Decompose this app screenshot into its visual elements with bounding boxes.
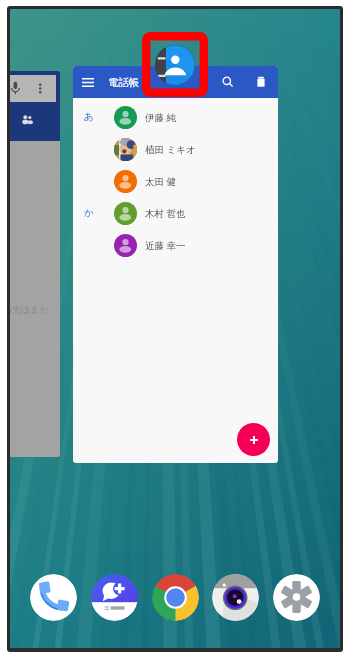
button[interactable]: Menu [77,71,99,93]
button[interactable]: 近藤 幸一 [73,229,278,261]
button[interactable]: Delete [250,71,272,93]
staticText: 電話帳 [108,76,140,89]
button[interactable]: Phone [30,574,77,621]
button[interactable]: 植田 ミキオ [73,133,278,165]
staticText: 連絡先はまだ [10,304,49,315]
staticText: 伊藤 純 [145,111,176,124]
staticText: か [84,207,94,219]
button[interactable]: Settings [273,574,320,621]
button[interactable]: 連絡先はまだ [10,71,60,457]
staticText: あ [84,111,94,123]
button[interactable]: Messages [91,574,138,621]
button[interactable]: Camera [212,574,259,621]
button[interactable]: か [73,197,278,229]
staticText: 植田 ミキオ [145,143,196,156]
staticText: 木村 哲也 [145,207,186,220]
staticText: 太田 健 [145,175,176,188]
button[interactable]: Search [217,71,239,93]
button[interactable]: あ [73,101,278,133]
button[interactable]: Chrome [152,574,199,621]
button[interactable]: Add contact [237,423,270,456]
staticText: 近藤 幸一 [145,239,186,252]
button[interactable]: 太田 健 [73,165,278,197]
